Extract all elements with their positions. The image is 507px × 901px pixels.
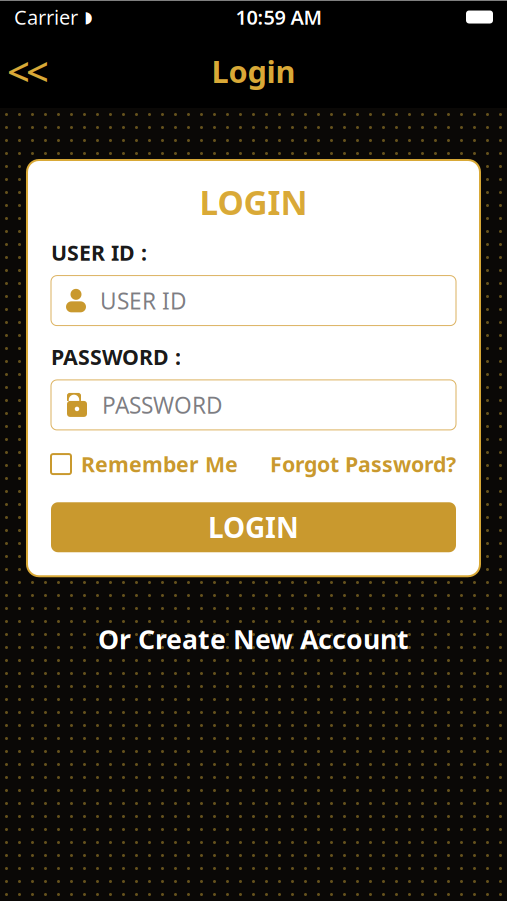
staticText: Or Create New Account [98, 621, 409, 657]
staticText: USER ID [100, 285, 187, 316]
button[interactable]: Or Create New Account [82, 611, 425, 667]
staticText: USER ID : [51, 238, 147, 267]
staticText: 10:59 AM [235, 4, 322, 30]
staticText: Remember Me [81, 450, 238, 478]
staticText: ◗ [84, 8, 92, 26]
button[interactable]: Forgot Password? [270, 446, 456, 482]
staticText: LOGIN [208, 509, 299, 546]
staticText: < [26, 44, 49, 97]
staticText: LOGIN [199, 180, 307, 224]
staticText: Login [211, 51, 295, 91]
button[interactable]: LOGIN [51, 502, 456, 552]
staticText: < [7, 44, 30, 97]
button[interactable]: Back [0, 46, 56, 96]
button[interactable]: Remember Me [51, 446, 238, 482]
staticText: Carrier [14, 4, 78, 30]
staticText: Forgot Password? [270, 450, 456, 478]
staticText: PASSWORD [102, 390, 223, 420]
staticText: PASSWORD : [51, 343, 181, 371]
